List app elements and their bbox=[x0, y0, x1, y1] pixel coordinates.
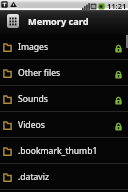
staticText: Memory card bbox=[28, 15, 89, 28]
staticText: .bookmark_thumb1 bbox=[18, 145, 98, 157]
staticText: Sounds bbox=[18, 93, 48, 105]
button[interactable]: Videos bbox=[0, 112, 128, 137]
button[interactable]: Apps bbox=[7, 14, 19, 28]
staticText: .dataviz bbox=[18, 171, 49, 183]
staticText: Images bbox=[18, 41, 49, 53]
button[interactable]: Other files bbox=[0, 60, 128, 85]
staticText: Other files bbox=[18, 67, 61, 79]
button[interactable]: Images bbox=[0, 34, 128, 59]
staticText: 11:21 bbox=[107, 1, 127, 11]
staticText: Videos bbox=[18, 119, 45, 131]
button[interactable]: Sounds bbox=[0, 86, 128, 111]
button[interactable]: .bookmark_thumb1 bbox=[0, 138, 128, 163]
button[interactable]: .dataviz bbox=[0, 164, 128, 189]
